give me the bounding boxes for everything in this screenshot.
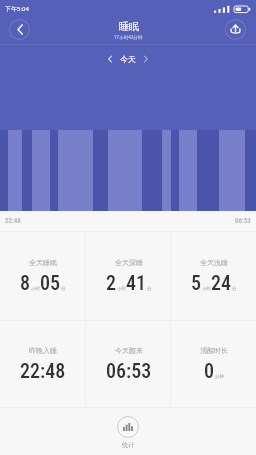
staticText: 今天醒来 (115, 346, 143, 355)
button[interactable]: Share (225, 19, 246, 40)
staticText: 0 (204, 359, 215, 382)
staticText: 分 (147, 286, 152, 292)
staticText: 05 (40, 271, 61, 294)
staticText: 2 (106, 271, 117, 294)
button[interactable]: Previous day (102, 51, 118, 67)
staticText: 分钟 (215, 374, 224, 380)
staticText: 22:48 (5, 217, 21, 225)
button[interactable]: 昨晚入睡 (0, 320, 86, 408)
staticText: 清醒时长 (200, 346, 228, 355)
staticText: 小时 (31, 286, 40, 292)
staticText: 小时 (117, 286, 126, 292)
staticText: 06:53 (106, 359, 152, 382)
staticText: 分 (61, 286, 66, 292)
staticText: 分 (232, 286, 237, 292)
button[interactable]: Back (9, 19, 30, 40)
button[interactable]: 全天深睡 (86, 231, 171, 320)
staticText: 22:48 (20, 359, 66, 382)
staticText: 全天睡眠 (29, 258, 57, 267)
staticText: 24 (211, 271, 232, 294)
staticText: 06:53 (235, 217, 251, 225)
staticText: 5 (191, 271, 202, 294)
staticText: 昨晚入睡 (29, 346, 57, 355)
button[interactable]: Next day (138, 51, 154, 67)
staticText: 小时 (202, 286, 211, 292)
staticText: 睡眠 (119, 20, 139, 33)
staticText: 下午5:04 (5, 5, 29, 13)
staticText: 统计 (122, 441, 134, 449)
staticText: 全天浅睡 (200, 258, 228, 267)
staticText: 41 (126, 271, 147, 294)
staticText: 8 (20, 271, 31, 294)
staticText: 全天深睡 (115, 258, 143, 267)
button[interactable]: 全天浅睡 (171, 231, 256, 320)
button[interactable]: 清醒时长 (171, 320, 256, 408)
button[interactable]: 全天睡眠 (0, 231, 86, 320)
staticText: 今天 (120, 54, 136, 64)
staticText: 17小时42分钟 (114, 34, 143, 40)
button[interactable]: 统计 (107, 414, 149, 451)
button[interactable]: 今天醒来 (86, 320, 171, 408)
